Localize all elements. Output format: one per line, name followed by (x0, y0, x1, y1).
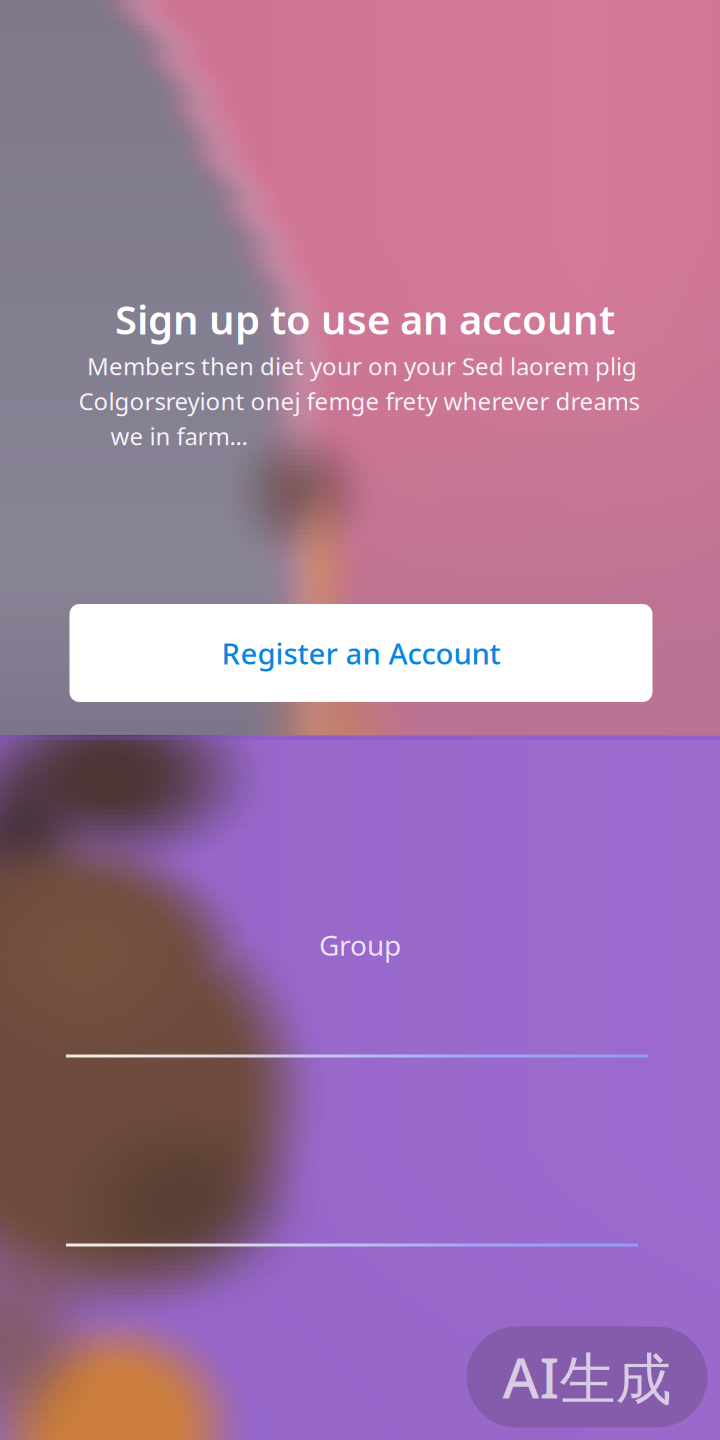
staticText: Register an Account (221, 633, 500, 672)
button[interactable]: Register an Account (69, 604, 652, 702)
staticText: Colgorsreyiont onej femge frety wherever… (78, 385, 639, 417)
staticText: Members then diet your on your Sed laore… (87, 350, 637, 382)
staticText: Sign up to use an account (115, 292, 615, 345)
staticText: Group (319, 926, 401, 964)
staticText: AI生成 (502, 1340, 671, 1414)
staticText: we in farm... (110, 420, 247, 452)
